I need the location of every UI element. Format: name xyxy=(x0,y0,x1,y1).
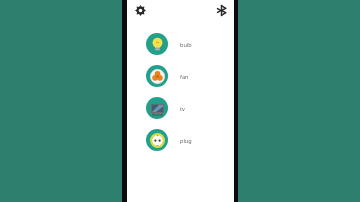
button[interactable]: bulb xyxy=(127,33,234,55)
staticText: bulb xyxy=(180,41,192,48)
staticText: fan xyxy=(180,73,189,80)
button[interactable]: fan xyxy=(127,65,234,87)
button[interactable]: plug xyxy=(127,129,234,151)
button[interactable]: Bluetooth xyxy=(213,2,229,18)
staticText: plug xyxy=(180,137,192,144)
button[interactable]: Settings xyxy=(132,2,148,18)
button[interactable]: tv xyxy=(127,97,234,119)
staticText: tv xyxy=(180,105,185,112)
